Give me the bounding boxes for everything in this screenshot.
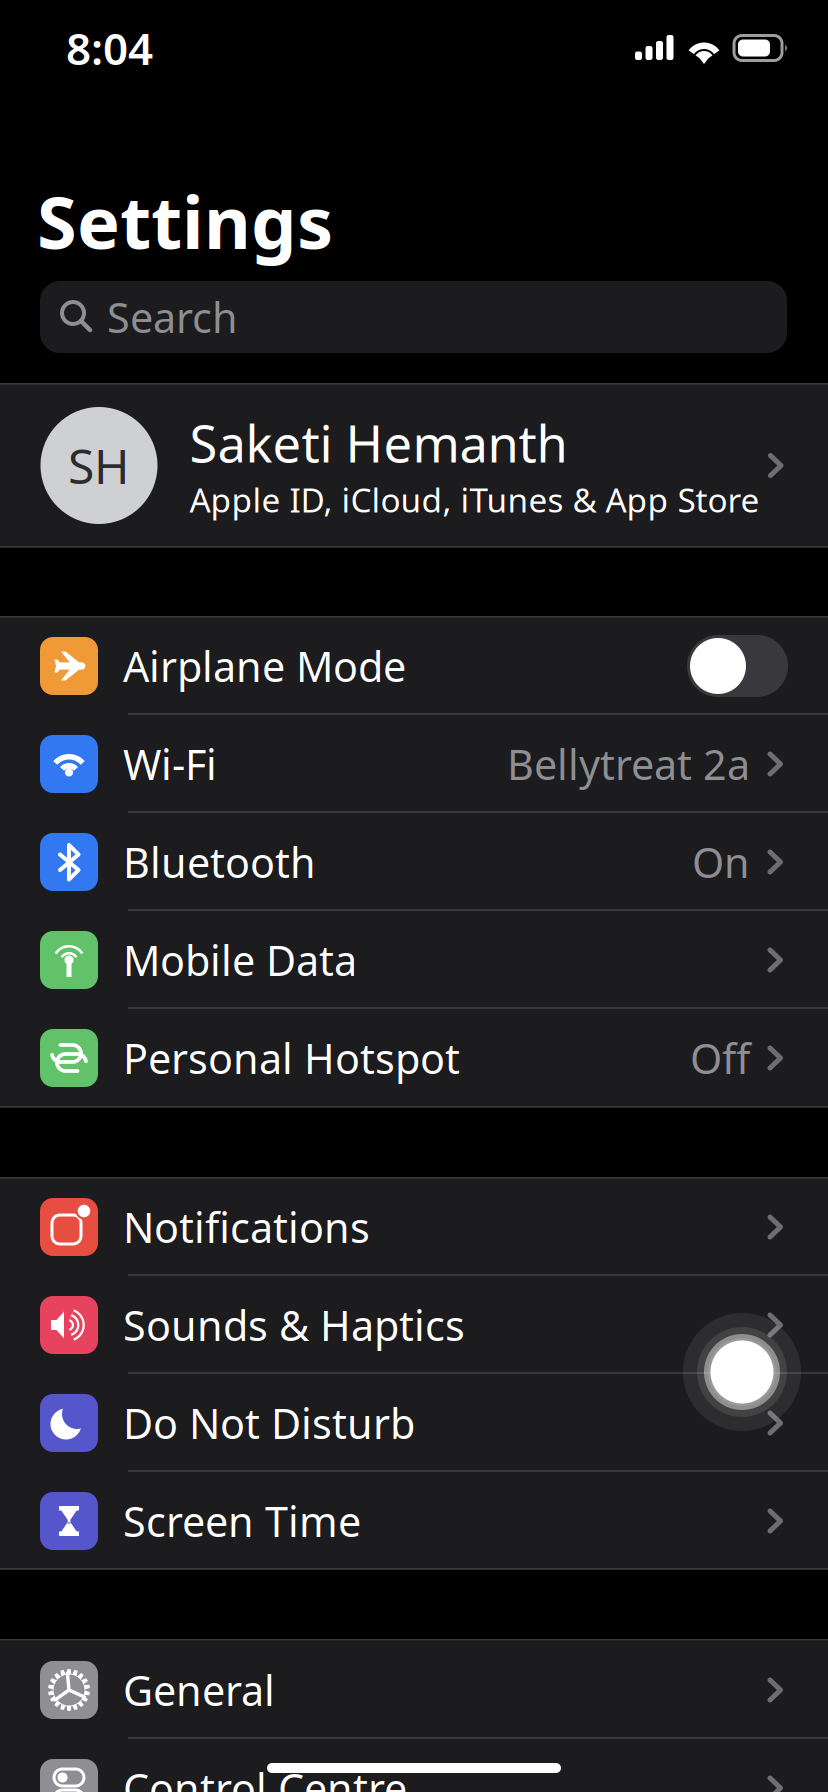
button[interactable]: Screen Time (0, 1472, 828, 1570)
button[interactable]: AssistiveTouch (683, 1313, 801, 1431)
staticText: Settings (37, 173, 333, 269)
staticText: Bluetooth (123, 835, 316, 889)
staticText: Notifications (123, 1200, 370, 1254)
button[interactable]: SH (0, 384, 828, 547)
staticText: 8:04 (66, 19, 153, 77)
staticText: Do Not Disturb (123, 1396, 415, 1450)
staticText: On (692, 835, 750, 889)
button[interactable]: Wi-Fi (0, 715, 828, 813)
staticText: Screen Time (123, 1494, 361, 1548)
button[interactable]: Do Not Disturb (0, 1374, 828, 1472)
button[interactable]: General (0, 1641, 828, 1739)
button[interactable]: Sounds & Haptics (0, 1276, 828, 1374)
staticText: SH (68, 434, 130, 497)
staticText: General (123, 1663, 275, 1717)
staticText: Control Centre (123, 1761, 407, 1792)
button[interactable]: Personal Hotspot (0, 1009, 828, 1107)
staticText: Airplane Mode (123, 639, 406, 693)
button[interactable]: Bluetooth (0, 813, 828, 911)
staticText: Bellytreat 2a (507, 737, 750, 791)
staticText: Search (107, 290, 238, 344)
button[interactable]: Search (40, 281, 787, 353)
button[interactable]: Notifications (0, 1178, 828, 1276)
staticText: Apple ID, iCloud, iTunes & App Store (189, 477, 759, 522)
button[interactable]: Airplane Mode (0, 617, 828, 715)
staticText: Personal Hotspot (123, 1031, 460, 1085)
staticText: Off (690, 1031, 750, 1085)
staticText: Mobile Data (123, 933, 357, 987)
staticText: Saketi Hemanth (189, 409, 567, 476)
staticText: Sounds & Haptics (123, 1298, 465, 1352)
staticText: Wi-Fi (123, 737, 217, 791)
button[interactable]: Control Centre (0, 1739, 828, 1792)
button[interactable]: Mobile Data (0, 911, 828, 1009)
